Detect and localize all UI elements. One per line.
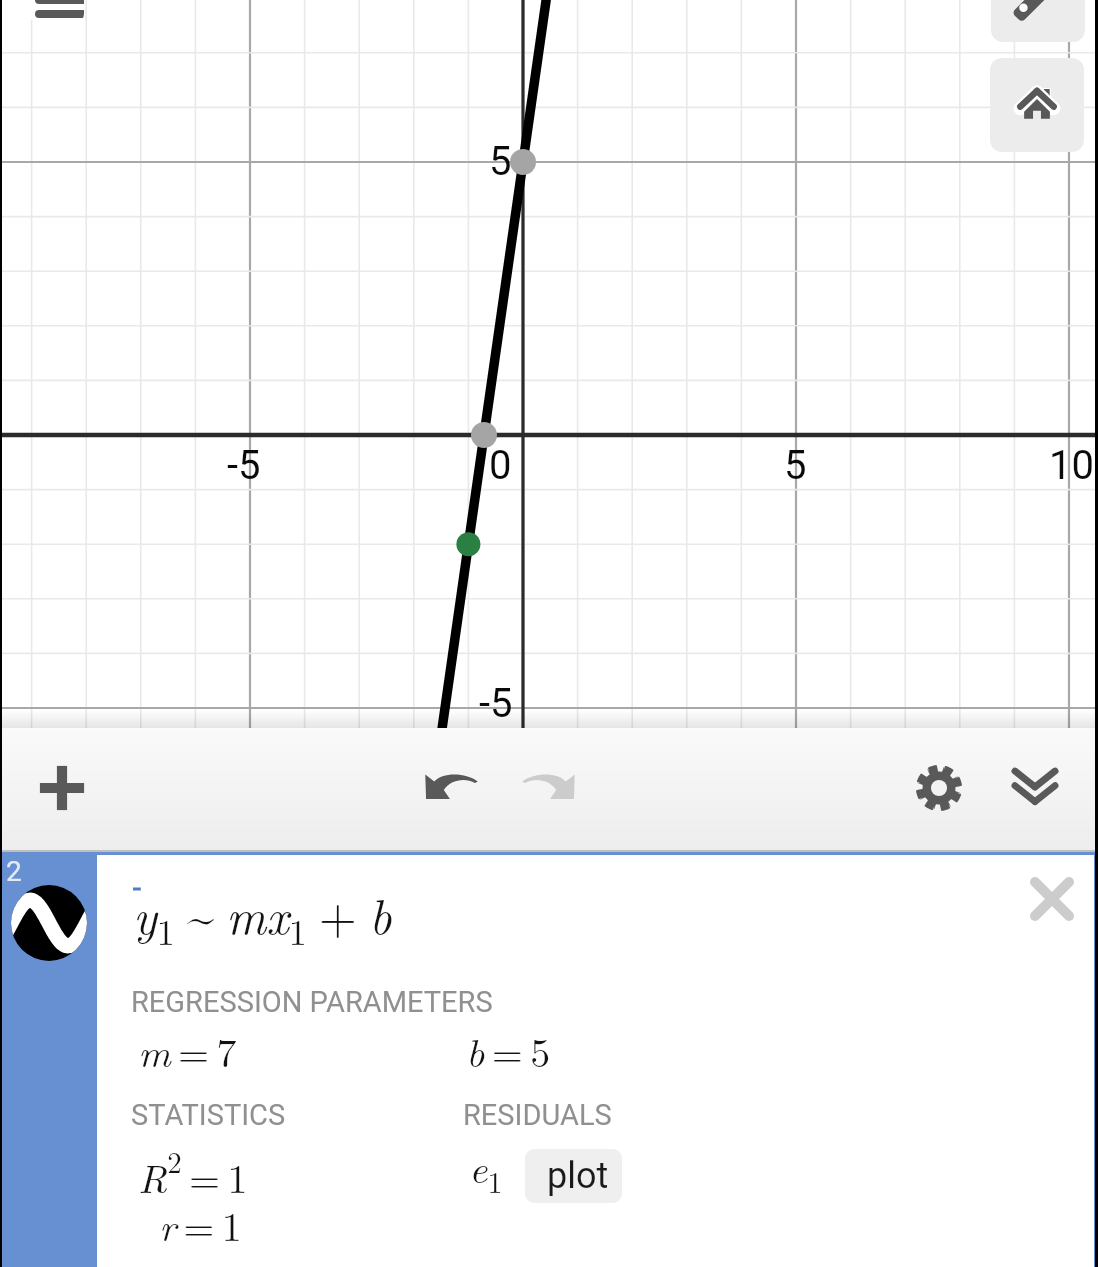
button[interactable]: Home bbox=[990, 58, 1084, 152]
staticText: m = 7 bbox=[138, 1022, 237, 1079]
staticText: 5 bbox=[489, 138, 512, 185]
button[interactable]: Expression 2 bbox=[0, 855, 97, 1267]
button[interactable]: Tools bbox=[991, 0, 1085, 42]
button[interactable]: Collapse bbox=[1001, 753, 1069, 821]
button[interactable]: plot bbox=[525, 1149, 622, 1203]
button[interactable]: Redo bbox=[509, 754, 589, 819]
staticText: 10 bbox=[1049, 442, 1094, 489]
staticText: RESIDUALS bbox=[463, 1098, 612, 1132]
button[interactable]: Close bbox=[1016, 863, 1088, 935]
staticText: r = 1 bbox=[159, 1196, 242, 1253]
staticText: 5 bbox=[784, 442, 807, 489]
staticText: b = 5 bbox=[466, 1022, 551, 1079]
staticText: 0 bbox=[489, 442, 512, 489]
staticText: STATISTICS bbox=[131, 1098, 286, 1132]
staticText: REGRESSION PARAMETERS bbox=[131, 985, 493, 1019]
staticText: 2 bbox=[6, 855, 22, 888]
staticText: -5 bbox=[479, 680, 513, 727]
staticText: e1 bbox=[469, 1138, 503, 1202]
button[interactable]: Add expression bbox=[28, 754, 96, 822]
staticText: y1 ~ mx1 + b bbox=[133, 879, 392, 956]
button[interactable]: Undo bbox=[412, 754, 492, 819]
button[interactable]: Menu bbox=[29, 0, 84, 22]
staticText: R2 = 1 bbox=[138, 1140, 248, 1205]
button[interactable]: Settings bbox=[904, 753, 974, 823]
staticText: -5 bbox=[227, 442, 261, 489]
staticText: plot bbox=[547, 1155, 609, 1197]
